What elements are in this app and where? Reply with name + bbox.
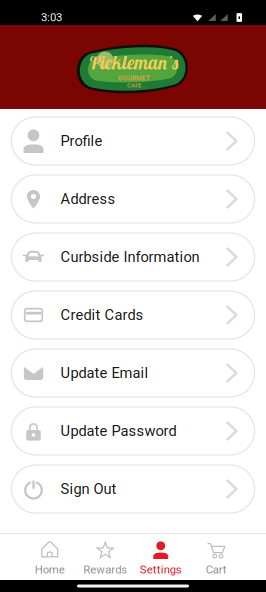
staticText: Home bbox=[35, 563, 65, 576]
staticText: Settings bbox=[140, 563, 182, 576]
staticText: Rewards bbox=[83, 563, 127, 576]
button[interactable]: Curbside Information bbox=[11, 233, 254, 281]
button[interactable]: Update Email bbox=[11, 349, 254, 397]
staticText: Profile bbox=[60, 132, 102, 150]
button[interactable]: Rewards bbox=[77, 533, 133, 580]
staticText: Pickleman's bbox=[89, 51, 179, 74]
staticText: Sign Out bbox=[60, 480, 116, 498]
button[interactable]: Update Password bbox=[11, 407, 254, 455]
staticText: GOURMET bbox=[118, 74, 150, 82]
button[interactable]: Profile bbox=[11, 117, 254, 165]
button[interactable]: Address bbox=[11, 175, 254, 223]
button[interactable]: Credit Cards bbox=[11, 291, 254, 339]
staticText: CAFE bbox=[127, 82, 141, 89]
staticText: Cart bbox=[206, 563, 227, 576]
button[interactable]: Cart bbox=[188, 533, 244, 580]
button[interactable]: Settings bbox=[133, 533, 188, 580]
button[interactable]: Home bbox=[22, 533, 77, 580]
staticText: 3:03 bbox=[41, 11, 62, 24]
staticText: Credit Cards bbox=[60, 306, 143, 324]
staticText: Address bbox=[60, 190, 115, 208]
staticText: Update Email bbox=[60, 364, 148, 382]
staticText: Curbside Information bbox=[60, 248, 199, 266]
staticText: Update Password bbox=[60, 422, 176, 440]
button[interactable]: Sign Out bbox=[11, 465, 254, 513]
